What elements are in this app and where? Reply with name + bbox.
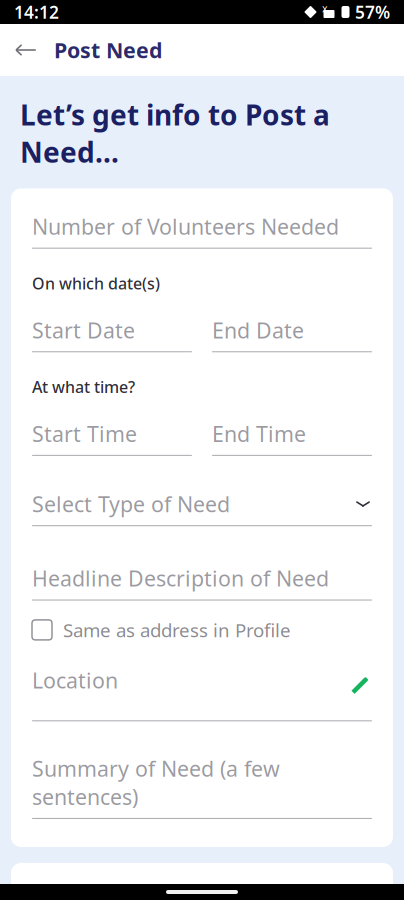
staticText: Any Special Requirements? (optional) [32,889,302,900]
staticText: Headline Description of Need [32,564,329,592]
staticText: Same as address in Profile [63,617,291,642]
staticText: On which date(s) [32,273,160,294]
button[interactable]: Summary of Need (a few sentences) [32,721,372,819]
staticText: End Time [212,419,306,448]
staticText: Summary of Need (a few sentences) [32,754,280,811]
staticText: At what time? [32,376,135,397]
staticText: Location [32,666,118,694]
button[interactable]: Edit location [32,642,372,721]
staticText: Let’s get info to Post a Need... [20,96,330,170]
button[interactable]: Start Time [32,419,192,456]
button[interactable]: Number of Volunteers Needed [32,188,372,249]
staticText: End Date [212,316,304,344]
staticText: 14:12 [14,0,59,23]
staticText: x [322,1,328,15]
button[interactable]: Select Type of Need [32,456,372,526]
button[interactable]: End Time [212,419,372,456]
button[interactable]: Back [0,30,38,70]
staticText: Number of Volunteers Needed [32,212,339,241]
staticText: Select Type of Need [32,490,230,518]
staticText: Start Time [32,419,137,448]
staticText: Start Date [32,316,135,344]
button[interactable]: Same as address in Profile [32,617,291,642]
staticText: Post Need [54,36,162,64]
staticText: 57% [355,0,390,23]
button[interactable]: Start Date [32,316,192,352]
button[interactable]: Headline Description of Need [32,526,372,600]
button[interactable]: End Date [212,316,372,352]
